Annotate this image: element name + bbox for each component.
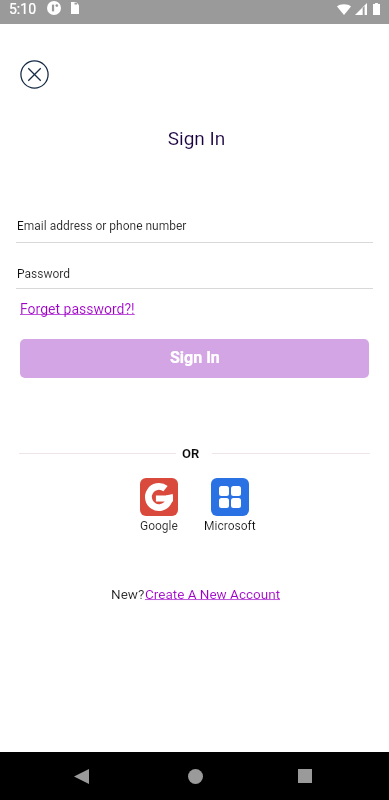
staticText: Sign In (2, 127, 389, 149)
button[interactable]: Sign In (20, 339, 369, 378)
button[interactable]: Forget password?! (20, 301, 135, 317)
button[interactable]: Back (64, 759, 98, 793)
staticText: 5:10 (9, 1, 36, 17)
button[interactable]: Create A New Account (145, 586, 281, 602)
staticText: Password (17, 267, 71, 281)
button[interactable]: Home (178, 759, 212, 793)
staticText: Google (140, 519, 178, 533)
button[interactable]: Microsoft (201, 478, 259, 533)
button[interactable]: Recent apps (288, 759, 322, 793)
staticText: Microsoft (204, 519, 256, 533)
staticText: New? (111, 586, 145, 602)
staticText: OR (182, 446, 200, 460)
staticText: Email address or phone number (17, 219, 187, 233)
button[interactable]: Close (20, 60, 49, 89)
button[interactable]: Google (130, 478, 188, 533)
staticText: Sign In (170, 348, 220, 367)
